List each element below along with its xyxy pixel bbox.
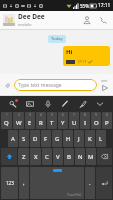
button[interactable]: 9 bbox=[91, 112, 101, 129]
staticText: I bbox=[84, 119, 87, 127]
button[interactable]: 6 bbox=[58, 112, 68, 129]
staticText: O bbox=[94, 119, 99, 127]
staticText: Hi bbox=[66, 48, 73, 56]
staticText: TouchPal bbox=[67, 192, 82, 197]
staticText: 7 bbox=[73, 113, 75, 117]
staticText: sent bbox=[101, 79, 108, 83]
button[interactable]: Z bbox=[18, 148, 29, 165]
staticText: F bbox=[44, 135, 48, 143]
staticText: G bbox=[55, 135, 60, 143]
staticText: 17:11 bbox=[98, 2, 111, 9]
button[interactable]: G bbox=[52, 130, 62, 147]
button[interactable]: . bbox=[85, 167, 95, 199]
button[interactable]: 5 bbox=[47, 112, 57, 129]
button[interactable]: 1 bbox=[1, 112, 12, 129]
staticText: Q bbox=[4, 119, 9, 127]
button[interactable]: Brush bbox=[76, 97, 90, 111]
staticText: E bbox=[28, 119, 32, 127]
staticText: R bbox=[39, 119, 43, 127]
button[interactable]: F bbox=[41, 130, 51, 147]
staticText: X bbox=[34, 153, 38, 161]
button[interactable]: Contact photo bbox=[3, 14, 15, 26]
button[interactable]: 3 bbox=[25, 112, 35, 129]
button[interactable]: Send bbox=[98, 79, 111, 92]
staticText: B bbox=[67, 153, 71, 161]
staticText: Today bbox=[51, 36, 63, 42]
button[interactable]: Hi bbox=[63, 46, 110, 66]
button[interactable]: Call bbox=[96, 13, 110, 27]
staticText: 9 bbox=[95, 113, 97, 117]
staticText: 123 bbox=[6, 180, 14, 186]
staticText: S bbox=[22, 135, 26, 143]
button[interactable]: D bbox=[30, 130, 40, 147]
staticText: 5 bbox=[51, 113, 53, 117]
staticText: 8 bbox=[84, 113, 86, 117]
button[interactable]: 123 bbox=[1, 167, 18, 199]
staticText: M bbox=[88, 153, 94, 161]
staticText: 1 bbox=[6, 113, 8, 117]
button[interactable]: C bbox=[42, 148, 52, 165]
staticText: P bbox=[105, 119, 109, 127]
button[interactable]: Dee Dee bbox=[18, 12, 80, 28]
button[interactable]: Attach bbox=[2, 80, 13, 91]
staticText: Dee Dee bbox=[18, 12, 45, 21]
staticText: mobile bbox=[18, 22, 32, 28]
staticText: 2 bbox=[18, 113, 20, 117]
button[interactable]: Theme bbox=[6, 97, 20, 111]
staticText: V bbox=[56, 153, 60, 161]
button[interactable]: Backspace bbox=[97, 148, 112, 165]
button[interactable]: Space bbox=[30, 167, 84, 199]
staticText: D bbox=[33, 135, 38, 143]
staticText: K bbox=[88, 135, 92, 143]
button[interactable]: Voice bbox=[41, 97, 55, 111]
staticText: Type text message bbox=[18, 82, 62, 89]
staticText: 0 bbox=[106, 113, 108, 117]
button[interactable]: Handwriting bbox=[58, 97, 72, 111]
staticText: 3 bbox=[29, 113, 31, 117]
button[interactable]: Type text message bbox=[14, 79, 97, 91]
button[interactable]: Shift bbox=[1, 148, 17, 165]
staticText: N bbox=[78, 153, 83, 161]
staticText: 17:11 bbox=[77, 59, 87, 64]
staticText: Y bbox=[61, 119, 65, 127]
button[interactable]: K bbox=[85, 130, 95, 147]
staticText: C bbox=[45, 153, 49, 161]
staticText: , bbox=[23, 179, 25, 187]
button[interactable]: X bbox=[30, 148, 41, 165]
button[interactable]: , bbox=[19, 167, 29, 199]
button[interactable]: V bbox=[53, 148, 63, 165]
button[interactable]: S bbox=[19, 130, 29, 147]
staticText: J bbox=[78, 135, 80, 143]
button[interactable]: 8 bbox=[80, 112, 90, 129]
staticText: T bbox=[50, 119, 54, 127]
button[interactable]: M bbox=[86, 148, 96, 165]
button[interactable]: H bbox=[63, 130, 73, 147]
button[interactable]: Enter bbox=[96, 167, 112, 199]
staticText: U bbox=[72, 119, 77, 127]
button[interactable]: B bbox=[64, 148, 74, 165]
button[interactable]: L bbox=[96, 130, 106, 147]
staticText: H bbox=[66, 135, 71, 143]
button[interactable]: Hide keyboard bbox=[93, 97, 107, 111]
button[interactable]: Stickers bbox=[23, 97, 37, 111]
button[interactable]: N bbox=[75, 148, 85, 165]
staticText: 55% bbox=[80, 3, 89, 9]
button[interactable]: 2 bbox=[13, 112, 24, 129]
staticText: . bbox=[89, 179, 91, 187]
staticText: L bbox=[99, 135, 103, 143]
staticText: Z bbox=[22, 153, 26, 161]
staticText: A bbox=[11, 135, 15, 143]
button[interactable]: 0 bbox=[102, 112, 112, 129]
button[interactable]: Add contact bbox=[80, 13, 94, 27]
button[interactable]: 4 bbox=[36, 112, 46, 129]
staticText: W bbox=[16, 119, 22, 127]
staticText: 6 bbox=[62, 113, 64, 117]
button[interactable]: 7 bbox=[69, 112, 79, 129]
staticText: 4 bbox=[40, 113, 42, 117]
button[interactable]: A bbox=[8, 130, 18, 147]
button[interactable]: J bbox=[74, 130, 84, 147]
